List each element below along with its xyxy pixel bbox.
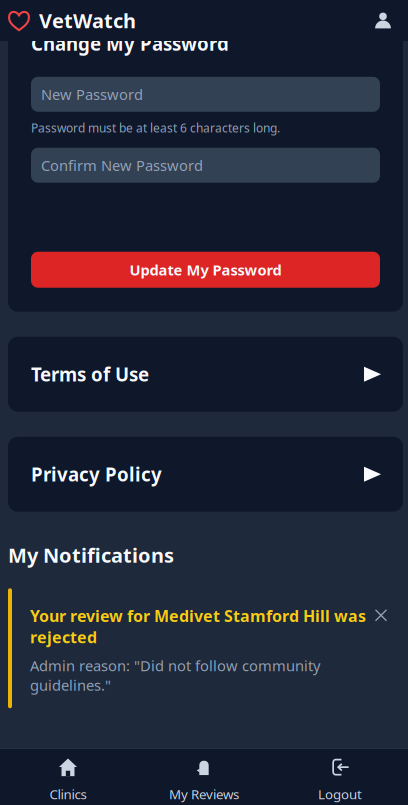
staticText: My Reviews: [169, 785, 239, 803]
staticText: Privacy Policy: [31, 462, 162, 487]
button[interactable]: Clinics: [0, 748, 136, 805]
staticText: Logout: [318, 785, 362, 803]
button[interactable]: My Reviews: [136, 748, 272, 805]
button[interactable]: VetWatch: [8, 7, 136, 34]
staticText: Admin reason: "Did not follow community …: [30, 656, 320, 695]
staticText: Change My Password: [31, 31, 229, 56]
button[interactable]: Account: [366, 3, 400, 37]
staticText: Update My Password: [129, 260, 281, 279]
button[interactable]: Terms of Use: [8, 337, 403, 412]
staticText: VetWatch: [39, 7, 136, 34]
staticText: New Password: [41, 85, 143, 104]
staticText: My Notifications: [8, 542, 174, 568]
button[interactable]: Dismiss notification: [368, 602, 394, 628]
staticText: Password must be at least 6 characters l…: [31, 120, 280, 136]
button[interactable]: Update My Password: [31, 252, 380, 288]
staticText: Terms of Use: [31, 362, 149, 387]
button[interactable]: Logout: [272, 748, 408, 805]
staticText: Your review for Medivet Stamford Hill wa…: [30, 605, 366, 648]
staticText: Confirm New Password: [41, 155, 203, 175]
button[interactable]: Privacy Policy: [8, 437, 403, 512]
staticText: Clinics: [49, 785, 86, 803]
